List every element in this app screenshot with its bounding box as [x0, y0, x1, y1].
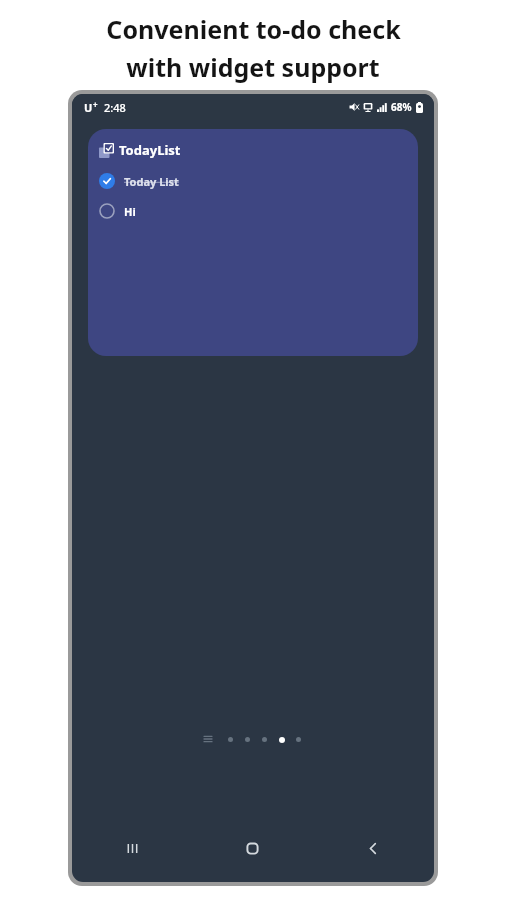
staticText: Hi	[124, 204, 136, 219]
staticText: TodayList	[119, 141, 181, 159]
button[interactable]: Home	[192, 828, 313, 868]
button[interactable]: Page 2	[241, 733, 254, 746]
button[interactable]: Page 3	[258, 733, 271, 746]
staticText: 68%	[391, 100, 412, 114]
staticText: 2:48	[104, 100, 126, 115]
staticText: Convenient to-do check	[106, 12, 401, 46]
staticText: +	[93, 99, 98, 110]
button[interactable]: Page 1	[224, 733, 237, 746]
button[interactable]: TodayList	[99, 141, 418, 159]
button[interactable]: Today List	[99, 173, 418, 189]
button[interactable]: Back	[313, 828, 434, 868]
button[interactable]: Hi	[99, 203, 418, 219]
button[interactable]: Widgets list	[201, 732, 215, 746]
staticText: U	[84, 100, 93, 115]
button[interactable]: Page 4	[275, 733, 288, 746]
button[interactable]: Recent apps	[72, 828, 192, 868]
button[interactable]: Page 5	[292, 733, 305, 746]
button[interactable]: TodayList	[88, 129, 418, 356]
staticText: Today List	[124, 174, 179, 189]
staticText: with widget support	[126, 50, 380, 84]
